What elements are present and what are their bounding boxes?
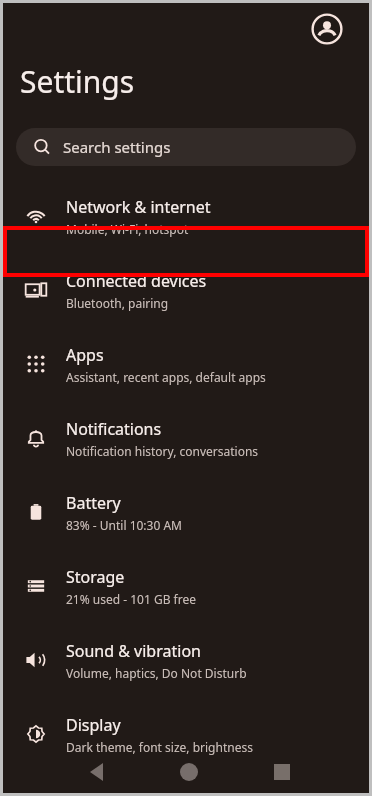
staticText: Volume, haptics, Do Not Disturb: [66, 665, 247, 681]
staticText: Sound & vibration: [66, 640, 201, 662]
button[interactable]: Storage: [3, 560, 369, 612]
staticText: Apps: [66, 344, 104, 366]
staticText: Network & internet: [66, 196, 211, 218]
button[interactable]: Battery: [3, 486, 369, 538]
button[interactable]: Account: [309, 11, 345, 47]
button[interactable]: Sound & vibration: [3, 634, 369, 686]
button[interactable]: Notifications: [3, 412, 369, 464]
staticText: Dark theme, font size, brightness: [66, 739, 253, 755]
staticText: Bluetooth, pairing: [66, 295, 169, 311]
button[interactable]: Network & internet: [3, 190, 369, 242]
staticText: Settings: [20, 61, 135, 102]
staticText: Mobile, Wi-Fi, hotspot: [66, 221, 189, 237]
button[interactable]: Apps: [3, 338, 369, 390]
staticText: 21% used - 101 GB free: [66, 591, 196, 607]
staticText: 83% - Until 10:30 AM: [66, 517, 182, 533]
staticText: Notifications: [66, 418, 162, 440]
staticText: Connected devices: [66, 270, 207, 292]
button[interactable]: Connected devices: [3, 264, 369, 316]
staticText: Storage: [66, 566, 125, 588]
button[interactable]: Search settings: [16, 128, 356, 166]
staticText: Display: [66, 714, 121, 736]
staticText: Assistant, recent apps, default apps: [66, 369, 266, 385]
button[interactable]: Display: [3, 708, 369, 760]
staticText: Notification history, conversations: [66, 443, 259, 459]
staticText: Battery: [66, 492, 121, 514]
staticText: Search settings: [63, 137, 171, 157]
